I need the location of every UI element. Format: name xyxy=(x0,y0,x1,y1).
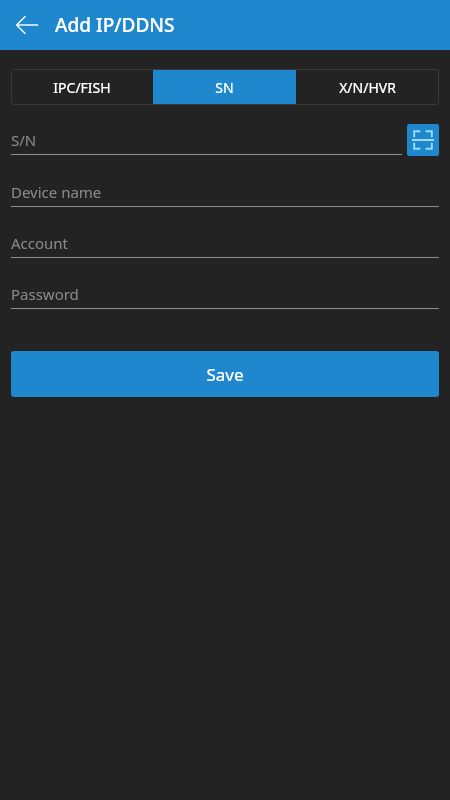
button[interactable]: Scan QR code xyxy=(407,124,439,156)
staticText: S/N xyxy=(11,130,37,150)
staticText: X/N/HVR xyxy=(339,78,396,97)
button[interactable]: Account xyxy=(11,229,439,258)
button[interactable]: X/N/HVR xyxy=(296,69,439,105)
staticText: Save xyxy=(206,363,244,386)
staticText: Device name xyxy=(11,182,102,202)
staticText: IPC/FISH xyxy=(53,78,111,97)
staticText: Account xyxy=(11,233,69,253)
button[interactable]: SN xyxy=(153,69,296,105)
button[interactable]: Back xyxy=(12,10,42,40)
staticText: Password xyxy=(11,284,79,304)
staticText: SN xyxy=(215,78,234,97)
button[interactable]: Device name xyxy=(11,178,439,207)
button[interactable]: Password xyxy=(11,280,439,309)
staticText: Add IP/DDNS xyxy=(55,12,175,38)
button[interactable]: Save xyxy=(11,351,439,397)
button[interactable]: S/N xyxy=(11,126,402,155)
button[interactable]: IPC/FISH xyxy=(11,69,153,105)
